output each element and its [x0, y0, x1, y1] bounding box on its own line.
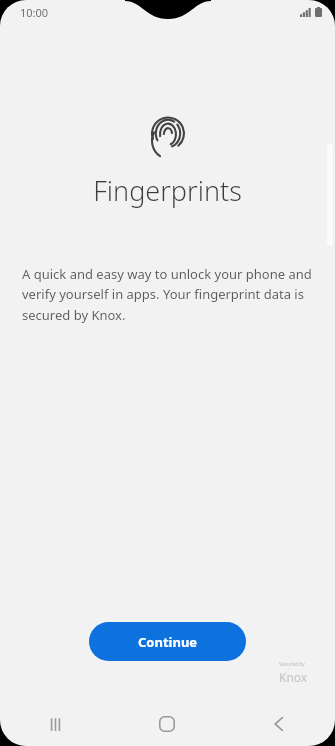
staticText: A quick and easy way to unlock your phon… — [22, 265, 315, 324]
button[interactable]: Recent apps — [0, 702, 111, 746]
button[interactable]: Back — [223, 702, 335, 746]
staticText: 10:00 — [20, 5, 49, 20]
button[interactable]: Home — [111, 702, 223, 746]
staticText: Continue — [138, 633, 198, 651]
staticText: Secured by — [279, 661, 305, 668]
staticText: Fingerprints — [93, 172, 242, 209]
button[interactable]: Continue — [89, 622, 246, 661]
staticText: Knox — [279, 669, 308, 685]
